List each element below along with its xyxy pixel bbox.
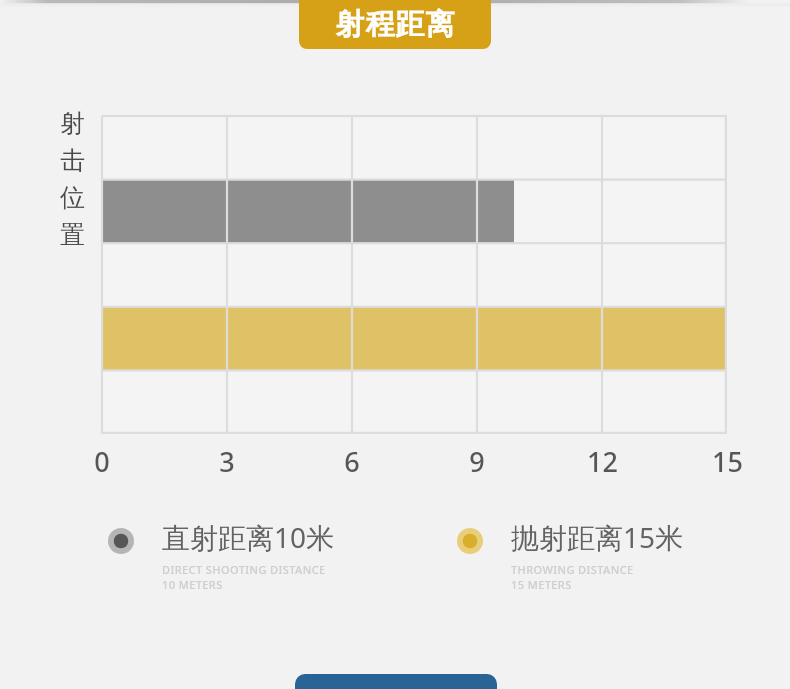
- staticText: 直射距离10米: [162, 518, 335, 556]
- staticText: 0: [94, 443, 110, 480]
- staticText: 射程距离: [335, 6, 455, 43]
- staticText: DIRECT SHOOTING DISTANCE: [162, 562, 326, 577]
- staticText: 击: [60, 145, 85, 176]
- button[interactable]: 抛射距离15米: [457, 518, 684, 598]
- staticText: 15 METERS: [511, 577, 572, 592]
- staticText: 3: [219, 443, 235, 480]
- staticText: 射: [60, 108, 85, 139]
- staticText: THROWING DISTANCE: [511, 562, 634, 577]
- staticText: 10 METERS: [162, 577, 223, 592]
- button[interactable]: 直射距离10米: [108, 518, 335, 598]
- staticText: 15: [712, 443, 743, 480]
- staticText: 抛射距离15米: [511, 518, 684, 556]
- staticText: 6: [344, 443, 360, 480]
- staticText: 置: [60, 219, 85, 250]
- staticText: 位: [60, 182, 85, 213]
- button[interactable]: 射程距离: [299, 0, 491, 49]
- button[interactable]: Next section: [295, 674, 497, 689]
- staticText: 12: [587, 443, 618, 480]
- staticText: 9: [469, 443, 485, 480]
